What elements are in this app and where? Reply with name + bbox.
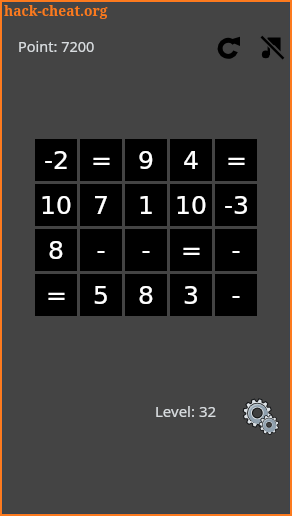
button[interactable]: Restart (213, 31, 245, 63)
staticText: hack-cheat.org (4, 1, 108, 20)
staticText: Point: 7200 (18, 36, 95, 56)
button[interactable]: 1 (125, 184, 167, 226)
staticText: 10 (40, 191, 72, 220)
button[interactable]: Settings (242, 396, 283, 437)
staticText: 9 (138, 146, 154, 175)
button[interactable]: 10 (35, 184, 77, 226)
button[interactable]: 7 (80, 184, 122, 226)
button[interactable]: = (35, 274, 77, 316)
staticText: = (46, 281, 67, 310)
button[interactable]: - (80, 229, 122, 271)
button[interactable]: = (80, 139, 122, 181)
staticText: 7 (93, 191, 109, 220)
staticText: 1 (138, 191, 154, 220)
button[interactable]: 8 (35, 229, 77, 271)
staticText: -3 (224, 191, 249, 220)
staticText: 8 (48, 236, 64, 265)
staticText: - (141, 236, 151, 265)
staticText: = (91, 146, 112, 175)
staticText: 4 (183, 146, 199, 175)
button[interactable]: 5 (80, 274, 122, 316)
button[interactable]: 3 (170, 274, 212, 316)
staticText: 3 (183, 281, 199, 310)
button[interactable]: -2 (35, 139, 77, 181)
button[interactable]: -3 (215, 184, 257, 226)
button[interactable]: 4 (170, 139, 212, 181)
staticText: - (231, 281, 241, 310)
staticText: 10 (175, 191, 207, 220)
button[interactable]: 8 (125, 274, 167, 316)
staticText: - (96, 236, 106, 265)
button[interactable]: 9 (125, 139, 167, 181)
button[interactable]: = (170, 229, 212, 271)
button[interactable]: - (215, 274, 257, 316)
button[interactable]: - (215, 229, 257, 271)
button[interactable]: = (215, 139, 257, 181)
staticText: = (181, 236, 202, 265)
button[interactable]: - (125, 229, 167, 271)
staticText: - (231, 236, 241, 265)
staticText: Level: 32 (155, 401, 217, 421)
staticText: 5 (93, 281, 109, 310)
staticText: = (226, 146, 247, 175)
button[interactable]: 10 (170, 184, 212, 226)
staticText: 8 (138, 281, 154, 310)
staticText: -2 (44, 146, 69, 175)
button[interactable]: Mute music (256, 32, 288, 64)
